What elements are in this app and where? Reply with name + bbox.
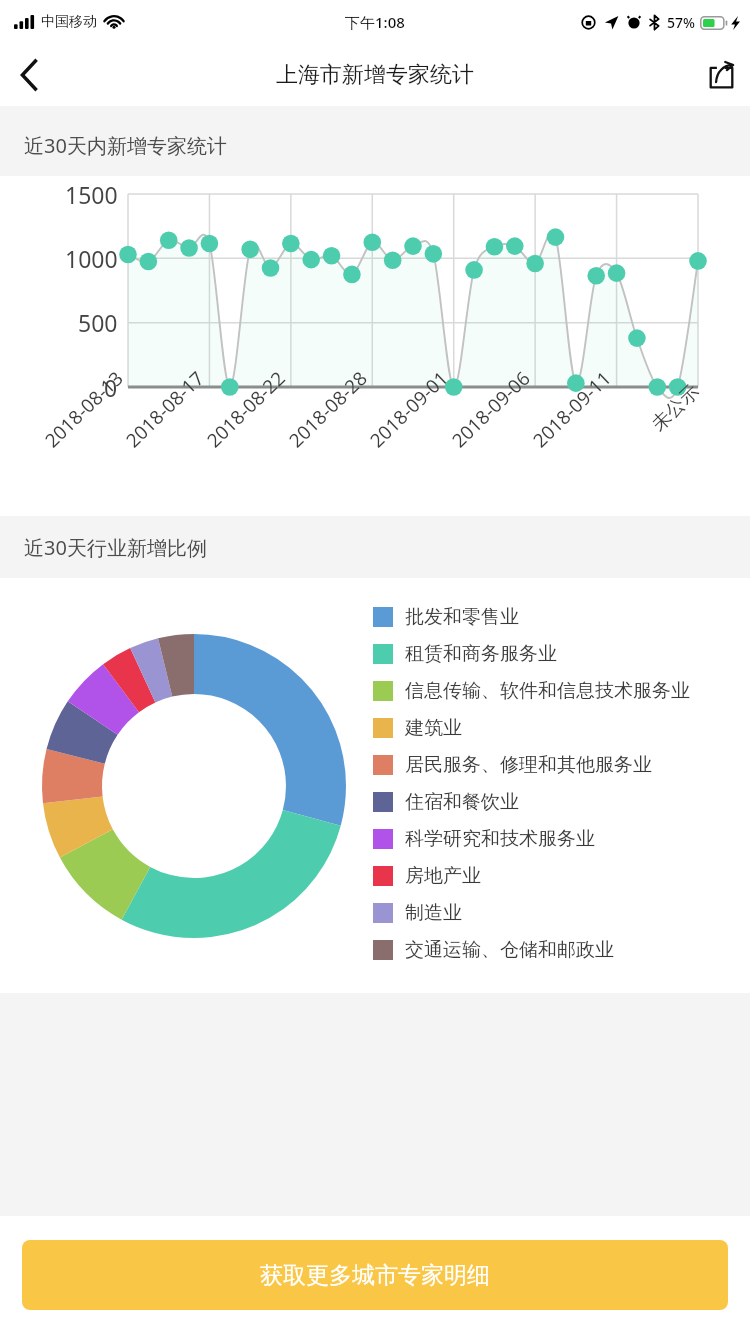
staticText: 居民服务、修理和其他服务业 <box>405 753 652 777</box>
staticText: 2018-09-06 <box>446 365 536 453</box>
staticText: 500 <box>78 307 118 338</box>
staticText: 房地产业 <box>405 864 481 888</box>
button[interactable]: 房地产业 <box>373 857 481 894</box>
button[interactable]: Back <box>0 46 58 104</box>
staticText: 0 <box>104 372 118 403</box>
button[interactable]: 科学研究和技术服务业 <box>373 820 595 857</box>
button[interactable]: 获取更多城市专家明细 <box>22 1240 728 1310</box>
staticText: 1500 <box>65 179 118 210</box>
staticText: 获取更多城市专家明细 <box>260 1261 490 1290</box>
staticText: 信息传输、软件和信息技术服务业 <box>405 679 690 703</box>
staticText: 1000 <box>65 243 118 274</box>
button[interactable]: 建筑业 <box>373 709 462 746</box>
staticText: 57% <box>667 13 695 32</box>
button[interactable]: 交通运输、仓储和邮政业 <box>373 931 614 968</box>
staticText: 2018-08-13 <box>39 365 129 453</box>
staticText: 2018-09-11 <box>527 365 617 453</box>
staticText: 制造业 <box>405 901 462 925</box>
staticText: 2018-08-22 <box>201 365 291 453</box>
staticText: 住宿和餐饮业 <box>405 790 519 814</box>
staticText: 下午1:08 <box>345 12 405 32</box>
button[interactable]: Share <box>692 46 750 104</box>
button[interactable]: 居民服务、修理和其他服务业 <box>373 746 652 783</box>
staticText: 上海市新增专家统计 <box>276 61 474 89</box>
staticText: 2018-08-28 <box>283 365 373 453</box>
staticText: 科学研究和技术服务业 <box>405 827 595 851</box>
button[interactable]: 制造业 <box>373 894 462 931</box>
staticText: 2018-09-01 <box>364 365 454 453</box>
staticText: 2018-08-17 <box>120 365 210 453</box>
staticText: 租赁和商务服务业 <box>405 642 557 666</box>
button[interactable]: 批发和零售业 <box>373 598 519 635</box>
staticText: 未公示 <box>647 380 704 436</box>
button[interactable]: 信息传输、软件和信息技术服务业 <box>373 672 690 709</box>
staticText: 建筑业 <box>405 716 462 740</box>
button[interactable]: 租赁和商务服务业 <box>373 635 557 672</box>
button[interactable]: 住宿和餐饮业 <box>373 783 519 820</box>
staticText: 近30天行业新增比例 <box>24 534 207 561</box>
staticText: 近30天内新增专家统计 <box>24 132 227 159</box>
staticText: 中国移动 <box>41 13 97 31</box>
staticText: 批发和零售业 <box>405 605 519 629</box>
staticText: 交通运输、仓储和邮政业 <box>405 938 614 962</box>
